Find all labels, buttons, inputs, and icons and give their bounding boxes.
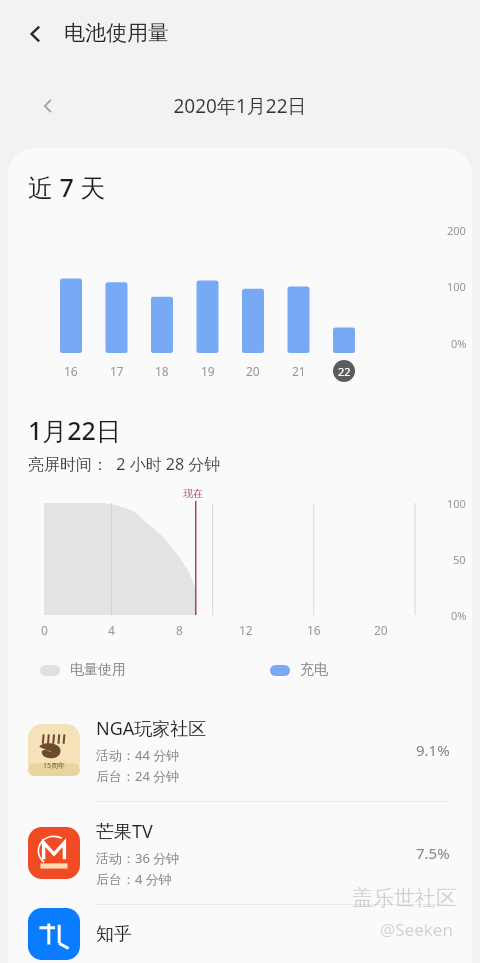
staticText: 知乎 xyxy=(96,923,132,946)
staticText: @Seeken xyxy=(380,918,453,941)
staticText: 亮屏时间： 2 小时 28 分钟 xyxy=(28,453,221,475)
button[interactable]: 电量使用 xyxy=(40,661,126,679)
staticText: 0% xyxy=(451,336,467,351)
staticText: 18 xyxy=(155,363,169,379)
staticText: 活动：44 分钟 xyxy=(96,746,180,764)
staticText: 活动：36 分钟 xyxy=(96,849,180,867)
staticText: 16 xyxy=(64,363,78,379)
staticText: 100 xyxy=(447,279,466,294)
staticText: 16 xyxy=(307,622,321,638)
button[interactable]: 17 xyxy=(106,360,128,382)
staticText: 200 xyxy=(447,223,466,238)
staticText: 近 7 天 xyxy=(28,170,106,204)
button[interactable]: Back xyxy=(18,16,54,52)
staticText: 0% xyxy=(451,608,467,623)
button[interactable]: 21 xyxy=(288,360,310,382)
staticText: 8 xyxy=(176,622,183,638)
staticText: 12 xyxy=(239,622,253,638)
staticText: NGA玩家社区 xyxy=(96,716,207,741)
button[interactable]: 充电 xyxy=(270,661,328,679)
staticText: 7.5% xyxy=(416,843,450,863)
staticText: 4 xyxy=(108,622,115,638)
staticText: 2020年1月22日 xyxy=(0,93,480,119)
staticText: 后台：4 分钟 xyxy=(96,870,172,888)
button[interactable]: Previous day xyxy=(28,86,68,126)
staticText: 15周年 xyxy=(43,761,66,771)
staticText: 50 xyxy=(453,552,466,567)
staticText: 17 xyxy=(110,363,124,379)
staticText: 20 xyxy=(246,363,260,379)
button[interactable]: 芒果TV xyxy=(8,802,472,904)
button[interactable]: 19 xyxy=(197,360,219,382)
staticText: 9.1% xyxy=(416,740,450,760)
staticText: 电量使用 xyxy=(70,661,126,679)
staticText: 1月22日 xyxy=(28,413,121,447)
staticText: 19 xyxy=(201,363,215,379)
button[interactable]: 16 xyxy=(60,360,82,382)
staticText: 100 xyxy=(447,496,466,511)
staticText: 芒果TV xyxy=(96,819,153,844)
staticText: 电池使用量 xyxy=(64,20,169,46)
button[interactable]: 知乎 xyxy=(8,905,472,963)
staticText: 后台：24 分钟 xyxy=(96,767,180,785)
button[interactable]: 15周年 xyxy=(8,699,472,801)
staticText: 20 xyxy=(374,622,388,638)
button[interactable]: 22 xyxy=(333,360,355,382)
button[interactable]: 18 xyxy=(151,360,173,382)
button[interactable]: 20 xyxy=(242,360,264,382)
staticText: 充电 xyxy=(300,661,328,679)
staticText: 22 xyxy=(338,364,351,379)
staticText: 盖乐世社区 xyxy=(352,885,457,911)
staticText: 现在 xyxy=(183,487,203,500)
staticText: 0 xyxy=(41,622,48,638)
staticText: 21 xyxy=(292,363,306,379)
